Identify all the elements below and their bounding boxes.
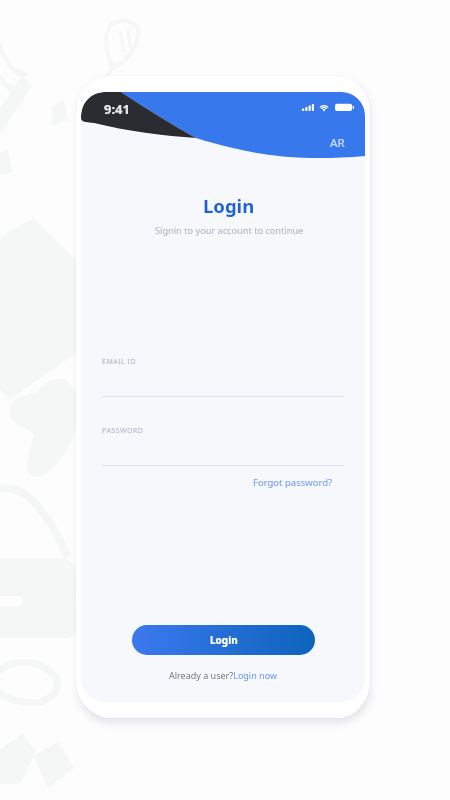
button[interactable]: Already a user?Login now <box>169 669 277 681</box>
button[interactable]: Login <box>132 625 315 655</box>
staticText: Login <box>210 633 238 647</box>
staticText: Login <box>203 193 255 218</box>
staticText: PASSWORD <box>102 426 144 436</box>
button[interactable]: Forgot password? <box>253 476 344 489</box>
staticText: 9:41 <box>104 100 130 118</box>
staticText: Signin to your account to continue <box>155 224 304 237</box>
staticText: AR <box>330 135 345 151</box>
staticText: EMAIL ID <box>102 357 137 367</box>
other: Status icons <box>302 103 354 111</box>
